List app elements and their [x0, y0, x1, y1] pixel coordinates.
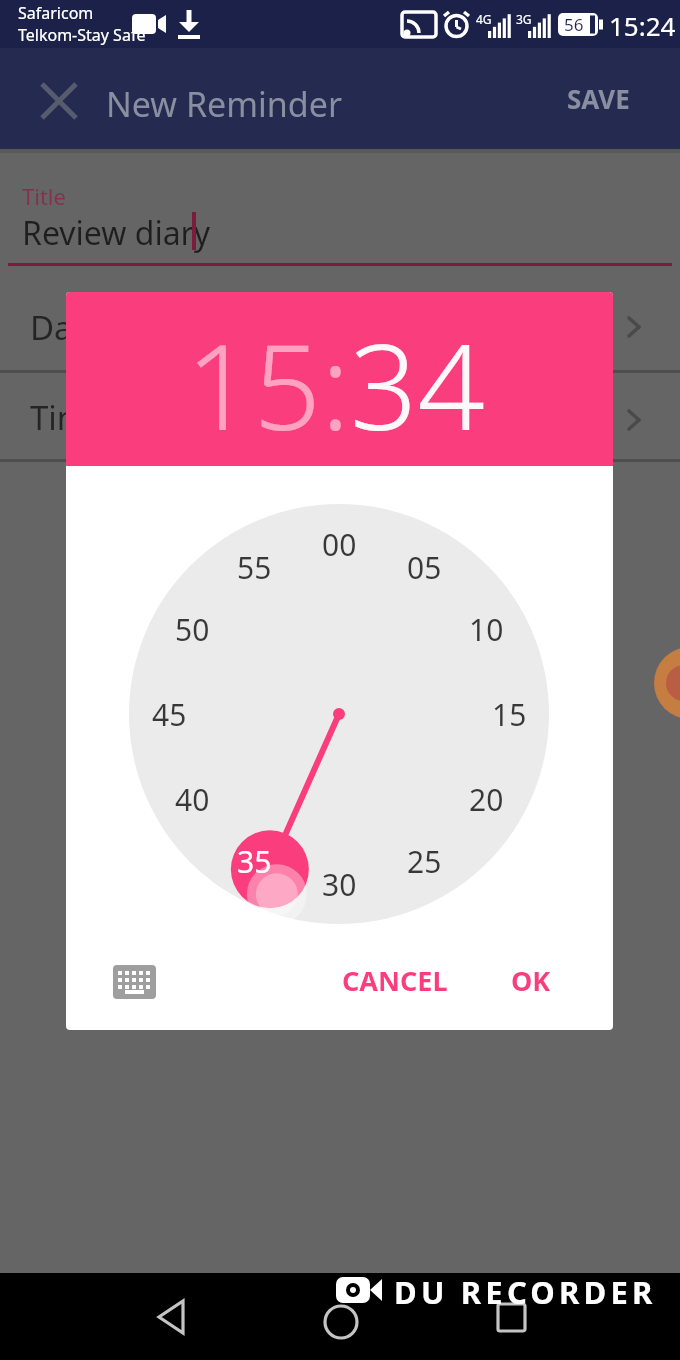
- staticText: Safaricom: [18, 2, 94, 24]
- staticText: 00: [322, 524, 357, 565]
- staticText: 50: [175, 609, 210, 650]
- button[interactable]: [146, 1292, 196, 1342]
- staticText: 10: [469, 609, 504, 650]
- staticText: Time: [30, 395, 107, 440]
- staticText: 05: [407, 547, 442, 588]
- staticText: 15: [492, 694, 527, 735]
- staticText: SAVE: [567, 81, 630, 116]
- staticText: Title: [22, 181, 66, 211]
- staticText: CANCEL: [342, 962, 448, 999]
- staticText: 15:24: [609, 8, 676, 43]
- button[interactable]: SAVE: [548, 68, 648, 128]
- button[interactable]: Time: [0, 373, 680, 462]
- staticText: Telkom-Stay Safe: [18, 24, 146, 46]
- staticText: Review diary: [22, 211, 211, 255]
- staticText: 4G: [476, 11, 492, 27]
- staticText: 25: [407, 841, 442, 882]
- staticText: 55: [237, 547, 272, 588]
- button[interactable]: [316, 1297, 366, 1347]
- button[interactable]: [96, 958, 172, 1006]
- staticText: OK: [511, 962, 551, 999]
- staticText: 40: [175, 779, 210, 820]
- button[interactable]: [34, 76, 84, 126]
- staticText: Date: [30, 305, 104, 350]
- staticText: New Reminder: [106, 81, 342, 127]
- button[interactable]: [486, 1292, 536, 1342]
- button[interactable]: OK: [496, 954, 566, 1006]
- button[interactable]: Date: [0, 285, 680, 372]
- staticText: 34: [350, 304, 485, 465]
- staticText: 56: [564, 13, 584, 36]
- staticText: 3G: [516, 11, 532, 27]
- staticText: 15: [186, 304, 321, 465]
- staticText: DU RECORDER: [394, 1271, 657, 1313]
- staticText: 35: [237, 841, 272, 882]
- staticText: 20: [469, 779, 504, 820]
- staticText: 45: [152, 694, 187, 735]
- staticText: :: [321, 304, 350, 465]
- staticText: 30: [322, 864, 357, 905]
- button[interactable]: CANCEL: [330, 954, 460, 1006]
